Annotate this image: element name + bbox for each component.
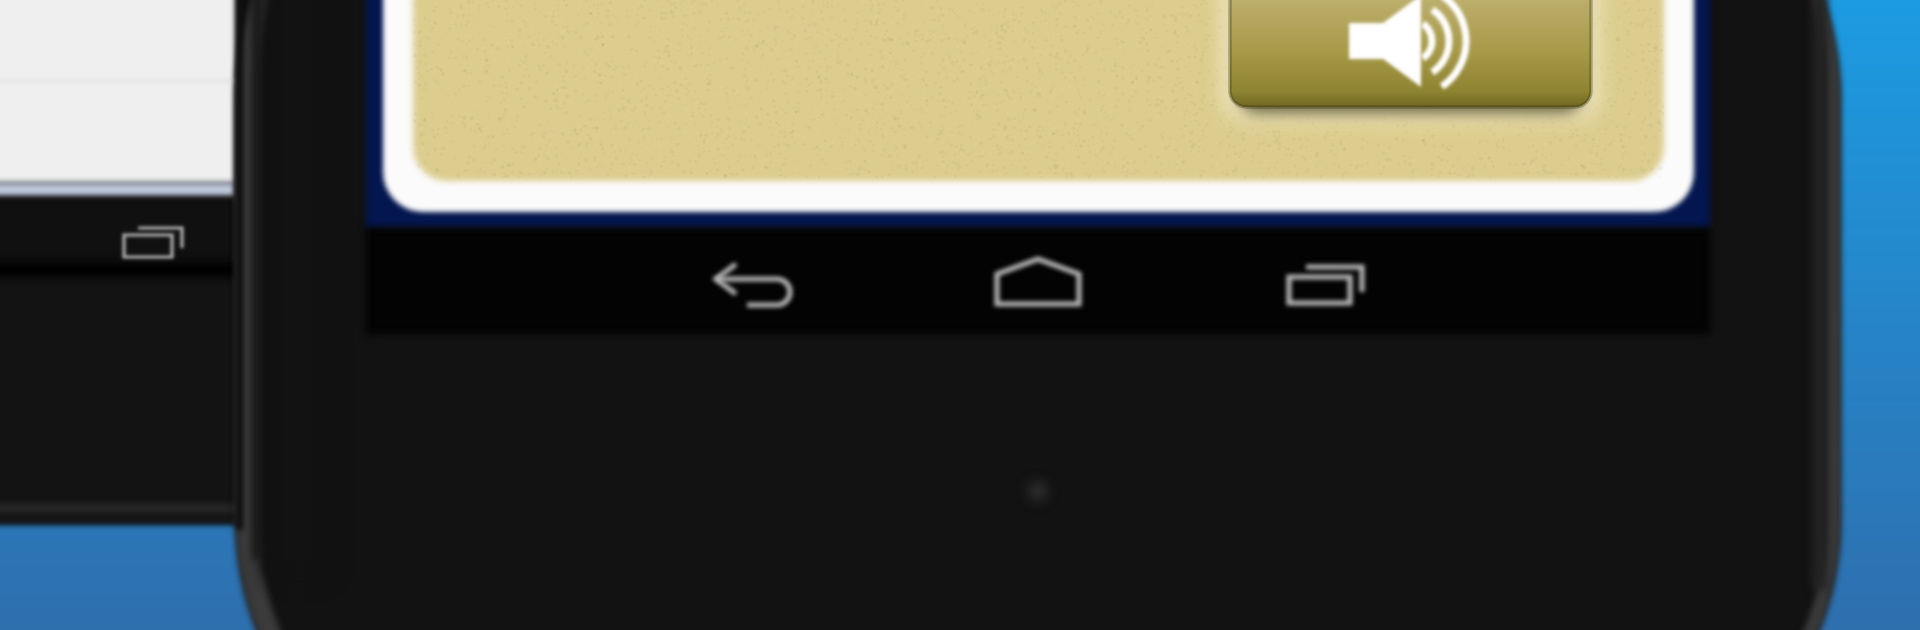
button[interactable]: Home [930,228,1150,334]
button[interactable]: Recent apps [96,197,212,268]
button[interactable]: Recent apps [1210,228,1440,334]
button[interactable]: Play sound [1230,0,1591,107]
button[interactable]: Back [640,228,880,334]
